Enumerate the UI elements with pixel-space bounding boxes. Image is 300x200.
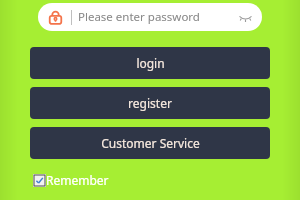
button[interactable]: Remember xyxy=(33,172,109,188)
button[interactable]: Password xyxy=(38,3,262,31)
staticText: register xyxy=(128,95,172,111)
staticText: Remember xyxy=(46,172,109,188)
button[interactable]: register xyxy=(30,87,270,119)
button[interactable]: Customer Service xyxy=(30,127,270,159)
staticText: Customer Service xyxy=(101,135,200,151)
staticText: Please enter password xyxy=(78,9,200,25)
other: Password xyxy=(47,9,64,26)
button[interactable]: login xyxy=(30,47,270,79)
staticText: login xyxy=(136,55,165,71)
button[interactable]: Show password xyxy=(234,6,256,28)
